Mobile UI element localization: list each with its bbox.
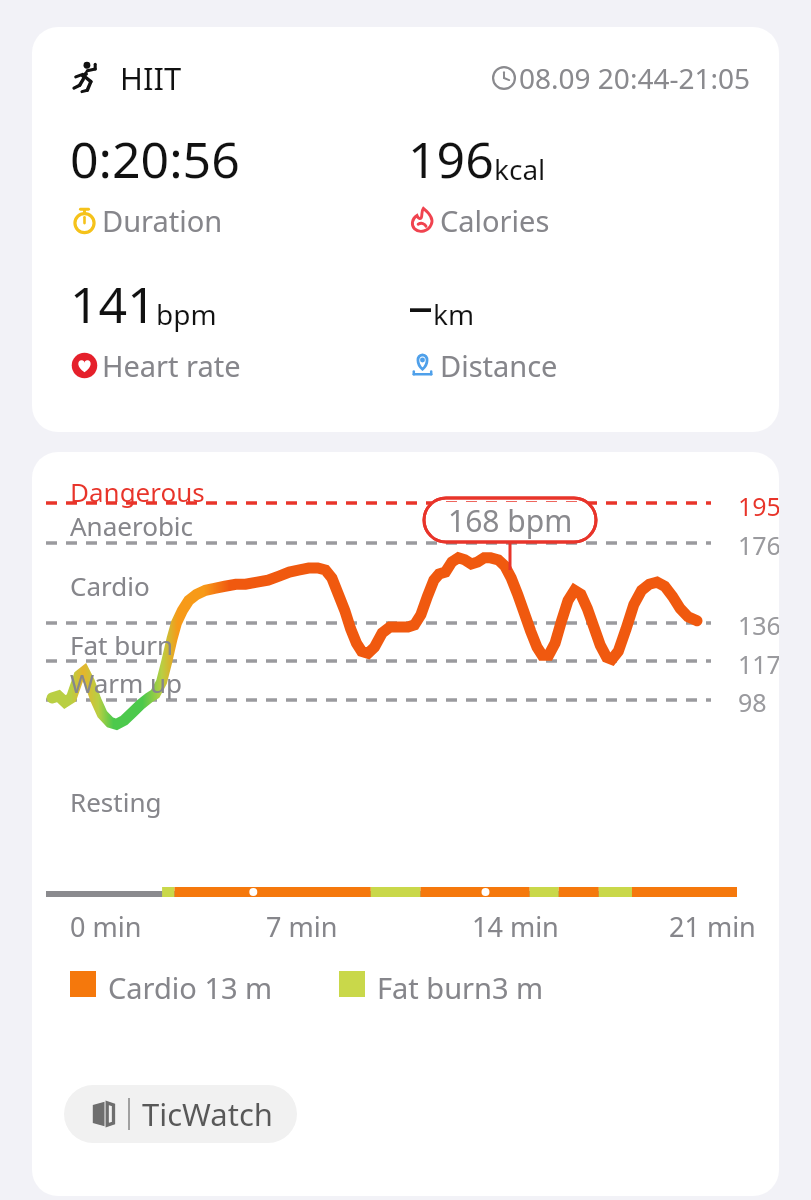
staticText: 21 min [669,908,756,945]
staticText: 98 [738,685,767,719]
staticText: 136 [738,608,779,642]
staticText: 14 min [472,908,559,945]
button[interactable]: 0:20:56 [70,125,408,240]
staticText: Anaerobic [70,508,194,543]
staticText: kcal [494,150,546,188]
staticText: Heart rate [102,346,241,385]
staticText: Cardio [70,568,150,603]
staticText: km [433,295,475,333]
staticText: 195 [738,489,779,523]
staticText: Resting [70,784,162,819]
staticText: 168 bpm [448,500,573,541]
button[interactable]: – [408,270,751,385]
staticText: TicWatch [142,1093,273,1135]
staticText: Fat burn [70,627,174,662]
staticText: – [408,270,433,338]
staticText: Fat burn3 m [377,968,544,1000]
staticText: 117 [738,647,779,681]
other: Workout type [70,60,106,96]
staticText: Distance [440,346,558,385]
button[interactable]: 196 [408,125,751,240]
button[interactable]: Workout type [32,27,779,432]
staticText: 7 min [266,908,338,945]
staticText: Warm up [70,665,183,700]
button[interactable]: Dangerous [32,452,779,1196]
staticText: 0 min [70,908,142,945]
staticText: 176 [738,528,779,562]
staticText: Duration [102,201,223,240]
staticText: 141 [70,270,156,338]
staticText: HIIT [120,57,182,99]
staticText: bpm [156,295,217,333]
staticText: Dangerous [70,474,205,509]
staticText: Calories [440,201,550,240]
button[interactable]: 141 [70,270,408,385]
staticText: 08.09 20:44-21:05 [519,59,751,97]
staticText: 0:20:56 [70,125,240,193]
button[interactable]: TicWatch logo [64,1085,297,1143]
other: TicWatch logo [88,1099,118,1129]
staticText: 196 [408,125,494,193]
staticText: Cardio 13 m [108,968,273,1000]
